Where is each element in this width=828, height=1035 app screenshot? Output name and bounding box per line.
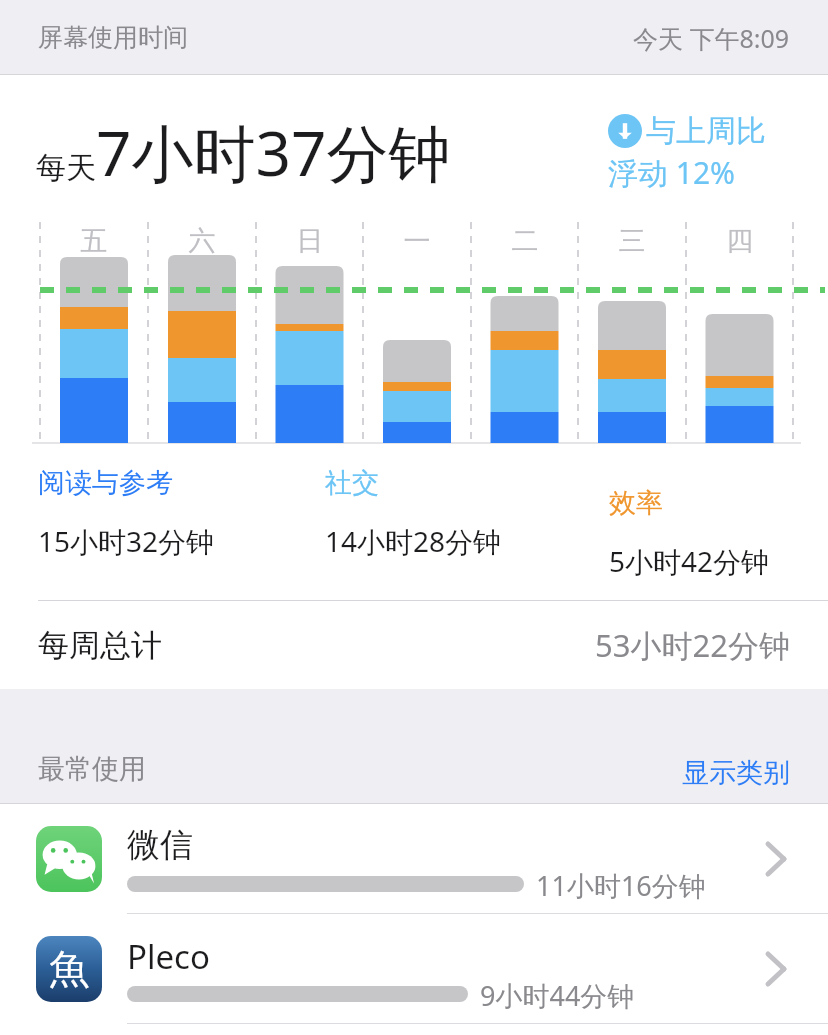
staticText: 效率: [609, 486, 663, 520]
button[interactable]: 显示类别: [682, 756, 790, 790]
staticText: 7小时37分钟: [96, 110, 451, 195]
staticText: 四: [700, 224, 780, 258]
staticText: 15小时32分钟: [38, 522, 215, 560]
staticText: 5小时42分钟: [609, 542, 770, 580]
staticText: 三: [592, 224, 672, 258]
staticText: 二: [485, 224, 565, 258]
staticText: Pleco: [127, 934, 210, 979]
staticText: 今天 下午8:09: [633, 21, 790, 55]
staticText: 11小时16分钟: [536, 867, 706, 904]
other: 下降: [608, 114, 642, 148]
staticText: 一: [377, 224, 457, 258]
staticText: 日: [270, 224, 350, 258]
staticText: 14小时28分钟: [325, 522, 502, 560]
button[interactable]: 每周总计: [0, 601, 828, 689]
staticText: 六: [162, 224, 242, 258]
staticText: 阅读与参考: [38, 466, 173, 500]
staticText: 9小时44分钟: [480, 977, 635, 1014]
staticText: 屏幕使用时间: [38, 22, 188, 53]
staticText: 53小时22分钟: [595, 624, 790, 666]
button[interactable]: 微信: [0, 804, 828, 914]
staticText: 魚: [49, 944, 89, 994]
staticText: 社交: [325, 466, 379, 500]
staticText: 最常使用: [38, 752, 146, 786]
staticText: 与上周比: [646, 112, 766, 150]
button[interactable]: 魚: [0, 914, 828, 1024]
staticText: 每周总计: [38, 626, 162, 665]
staticText: 显示类别: [682, 756, 790, 790]
staticText: 浮动 12%: [608, 152, 736, 193]
staticText: 五: [54, 224, 134, 258]
staticText: 微信: [127, 824, 193, 866]
other: 查看详情: [766, 842, 786, 876]
other: 查看详情: [766, 952, 786, 986]
staticText: 每天: [36, 149, 96, 187]
